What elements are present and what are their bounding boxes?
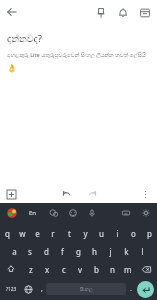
button[interactable]: p (141, 224, 157, 242)
staticText: k (124, 246, 129, 257)
button[interactable]: w (15, 224, 30, 242)
button[interactable]: Redo (84, 186, 100, 202)
button[interactable]: z (22, 260, 39, 278)
button[interactable]: . (126, 278, 135, 300)
staticText: e (35, 228, 40, 239)
button[interactable]: Undo (58, 186, 74, 202)
staticText: m (124, 264, 132, 275)
staticText: සිංහල (80, 287, 93, 292)
button[interactable]: Keyboard layout (119, 206, 133, 220)
staticText: o (131, 228, 136, 239)
staticText: r (51, 228, 55, 239)
button[interactable]: l (134, 242, 150, 260)
staticText: c (62, 264, 66, 275)
staticText: හෙළකුරු Lite යතුරුපුවරුවෙන් සිංහල ලියන්න… (7, 51, 146, 59)
button[interactable]: සිංහල (46, 283, 126, 295)
staticText: l (141, 246, 144, 257)
button[interactable]: r (45, 224, 61, 242)
button[interactable]: k (118, 242, 134, 260)
button[interactable]: h (86, 242, 102, 260)
button[interactable]: Change language (20, 278, 37, 300)
staticText: j (109, 246, 112, 257)
button[interactable]: s (22, 242, 38, 260)
button[interactable]: x (39, 260, 56, 278)
button[interactable]: m (120, 260, 136, 278)
button[interactable]: Shift (0, 260, 22, 278)
staticText: 👌 (7, 64, 17, 73)
button[interactable]: Emoji keyboard (47, 206, 61, 220)
button[interactable]: g (70, 242, 86, 260)
button[interactable]: Helakuru (4, 205, 20, 221)
staticText: දන්නවද? (7, 32, 42, 45)
button[interactable]: Symbols (3, 278, 20, 300)
button[interactable]: a (7, 242, 22, 260)
staticText: u (99, 228, 104, 239)
button[interactable]: Archive (136, 4, 153, 21)
staticText: d (44, 246, 49, 257)
button[interactable]: Back (3, 3, 21, 21)
button[interactable]: c (56, 260, 72, 278)
staticText: p (147, 228, 152, 239)
staticText: s (28, 246, 32, 257)
staticText: v (78, 264, 83, 275)
staticText: ?123 (6, 286, 17, 293)
button[interactable]: Add (3, 186, 19, 202)
staticText: y (83, 228, 88, 239)
staticText: w (19, 228, 26, 239)
button[interactable]: Pin (92, 4, 109, 21)
button[interactable]: y (77, 224, 93, 242)
staticText: , (41, 284, 43, 294)
button[interactable]: Backspace (136, 260, 157, 278)
button[interactable]: q (0, 224, 15, 242)
button[interactable]: En (26, 208, 40, 218)
staticText: f (61, 246, 64, 257)
staticText: . (130, 284, 132, 294)
button[interactable]: i (109, 224, 125, 242)
staticText: a (12, 246, 17, 257)
button[interactable]: b (88, 260, 104, 278)
button[interactable]: Remind me (114, 4, 131, 21)
staticText: h (92, 246, 97, 257)
button[interactable]: j (102, 242, 118, 260)
button[interactable]: d (38, 242, 54, 260)
staticText: g (76, 246, 81, 257)
staticText: b (94, 264, 99, 275)
button[interactable]: n (104, 260, 120, 278)
button[interactable]: , (37, 278, 46, 300)
staticText: n (110, 264, 115, 275)
staticText: t (68, 228, 71, 239)
button[interactable]: e (30, 224, 45, 242)
staticText: En (29, 209, 37, 217)
button[interactable]: Enter (137, 281, 154, 298)
staticText: x (45, 264, 50, 275)
button[interactable]: Settings (139, 206, 153, 220)
button[interactable]: v (72, 260, 88, 278)
button[interactable]: u (93, 224, 109, 242)
button[interactable]: More options (137, 186, 153, 202)
staticText: z (29, 264, 33, 275)
button[interactable]: Emoticons (66, 206, 80, 220)
button[interactable]: Voice input (85, 206, 99, 220)
button[interactable]: f (54, 242, 70, 260)
staticText: q (5, 228, 10, 239)
button[interactable]: o (125, 224, 141, 242)
button[interactable]: t (61, 224, 77, 242)
staticText: i (116, 228, 119, 239)
